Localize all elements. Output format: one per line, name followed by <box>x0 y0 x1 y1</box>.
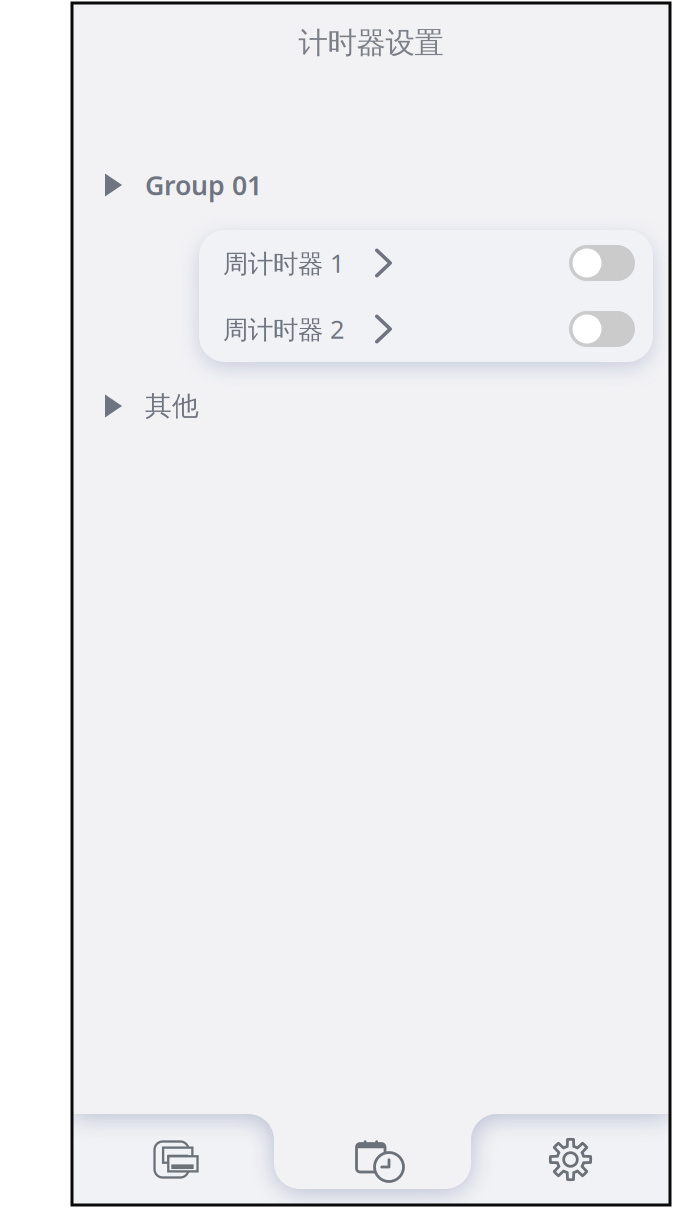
staticText: 周计时器 2 <box>223 312 344 346</box>
staticText: 其他 <box>145 390 199 422</box>
staticText: 计时器设置 <box>298 25 443 61</box>
button[interactable]: 其他 <box>72 382 670 430</box>
button[interactable]: 周计时器 2 <box>199 296 421 362</box>
staticText: Group 01 <box>145 167 262 203</box>
button[interactable]: Group 01 <box>72 161 670 209</box>
button[interactable]: Toggle 周计时器 1 <box>569 245 653 281</box>
button[interactable]: Toggle 周计时器 2 <box>569 311 653 347</box>
button[interactable]: Timers <box>271 1114 471 1205</box>
button[interactable]: Settings <box>471 1114 670 1205</box>
button[interactable]: 周计时器 1 <box>199 230 421 296</box>
staticText: 周计时器 1 <box>223 246 344 280</box>
button[interactable]: Projects <box>72 1114 271 1205</box>
